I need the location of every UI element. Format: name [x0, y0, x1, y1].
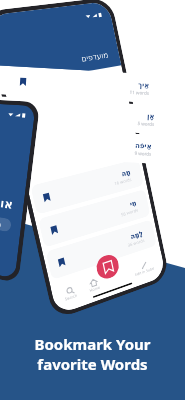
- staticText: 11 words: [129, 89, 150, 96]
- staticText: מועדפים: [80, 50, 110, 64]
- staticText: אֵיך: [138, 81, 150, 90]
- staticText: אָן: [147, 112, 155, 121]
- staticText: favorite Words: [37, 354, 148, 374]
- button[interactable]: Edit in Subtl: [131, 256, 157, 279]
- button[interactable]: אֵיפֹה: [0, 126, 175, 165]
- staticText: 16 words: [114, 176, 132, 186]
- staticText: לָמָה: [130, 230, 144, 241]
- staticText: Bookmark Your: [34, 334, 151, 354]
- staticText: אוצר מילים: [0, 188, 15, 212]
- staticText: Search: [64, 293, 78, 302]
- staticText: התחל: [0, 218, 3, 228]
- staticText: Home: [89, 284, 101, 293]
- staticText: מִי: [129, 199, 138, 209]
- staticText: 56 words: [120, 207, 139, 217]
- button[interactable]: התחל: [0, 214, 12, 232]
- button[interactable]: Home: [85, 274, 103, 296]
- button[interactable]: Search: [60, 282, 80, 304]
- staticText: 9 words: [134, 150, 152, 157]
- button[interactable]: מִי: [38, 189, 150, 248]
- button[interactable]: Bookmark: [94, 252, 121, 282]
- button[interactable]: אֵיך: [0, 65, 173, 104]
- staticText: 5 words: [137, 120, 155, 127]
- staticText: מָה: [121, 168, 131, 178]
- button[interactable]: מָה: [30, 158, 144, 215]
- button[interactable]: לָמָה: [45, 219, 157, 280]
- button[interactable]: אָן: [0, 96, 178, 135]
- staticText: 36 words: [127, 237, 146, 248]
- staticText: אֵיפֹה: [135, 142, 152, 151]
- staticText: Edit in Subtl: [135, 266, 155, 277]
